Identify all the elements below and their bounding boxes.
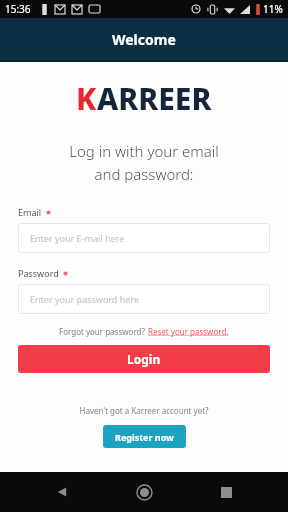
staticText: 15:36 bbox=[5, 2, 31, 16]
staticText: 11% bbox=[263, 2, 283, 16]
button[interactable]: Register now bbox=[103, 425, 186, 448]
staticText: Login bbox=[127, 351, 161, 367]
button[interactable]: Enter your E-mail here bbox=[18, 223, 270, 253]
button[interactable]: Home bbox=[124, 472, 164, 512]
staticText: Register now bbox=[115, 431, 174, 443]
staticText: Forgot your password? bbox=[59, 326, 148, 337]
staticText: Haven't got a Karreer account yet? bbox=[79, 405, 209, 416]
staticText: ARREER bbox=[97, 78, 212, 119]
staticText: Log in with your email bbox=[69, 141, 219, 161]
button[interactable]: Recent apps bbox=[206, 472, 246, 512]
staticText: Welcome bbox=[112, 30, 176, 49]
staticText: Reset your password. bbox=[148, 326, 229, 337]
button[interactable]: Back bbox=[42, 472, 82, 512]
staticText: Password bbox=[18, 267, 59, 279]
staticText: Email bbox=[18, 206, 42, 218]
button[interactable]: Login bbox=[18, 345, 270, 373]
staticText: Enter your E-mail here bbox=[30, 232, 125, 244]
button[interactable]: Reset your password. bbox=[148, 326, 229, 337]
staticText: Enter your password here bbox=[30, 293, 139, 305]
staticText: and password: bbox=[94, 164, 194, 184]
staticText: K bbox=[76, 78, 97, 119]
button[interactable]: Enter your password here bbox=[18, 284, 270, 314]
